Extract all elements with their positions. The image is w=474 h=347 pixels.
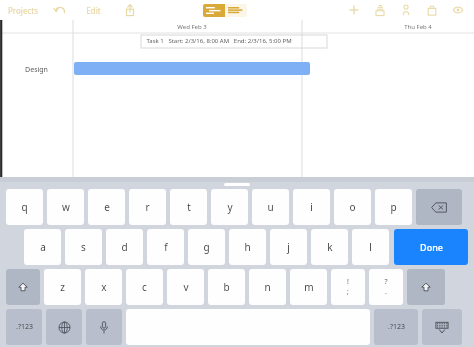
staticText: Thu Feb 4 <box>404 23 432 31</box>
button[interactable]: Hide keyboard <box>422 309 462 345</box>
staticText: z <box>60 280 65 294</box>
button[interactable]: i <box>293 189 330 225</box>
staticText: k <box>327 240 333 254</box>
button[interactable]: Edit <box>86 5 101 16</box>
staticText: f <box>164 240 168 254</box>
button[interactable]: View <box>450 2 466 18</box>
staticText: .?123 <box>388 322 405 332</box>
button[interactable]: Design task bar <box>74 62 310 75</box>
button[interactable]: d <box>106 229 143 265</box>
button[interactable]: Shift <box>6 269 40 305</box>
button[interactable]: Task 1 Start: 2/3/16, 8:00 AM End: 2/3/1… <box>146 37 292 45</box>
button[interactable]: z <box>44 269 81 305</box>
staticText: Done <box>420 241 443 253</box>
button[interactable]: m <box>290 269 327 305</box>
button[interactable]: b <box>208 269 245 305</box>
staticText: e <box>104 200 110 214</box>
button[interactable]: n <box>249 269 286 305</box>
staticText: .?123 <box>16 322 33 332</box>
staticText: d <box>121 240 128 254</box>
button[interactable]: x <box>85 269 122 305</box>
button[interactable]: w <box>47 189 84 225</box>
button[interactable]: e <box>88 189 125 225</box>
staticText: r <box>145 200 150 214</box>
button[interactable]: u <box>252 189 289 225</box>
button[interactable]: Shift <box>407 269 445 305</box>
staticText: x <box>101 280 107 294</box>
staticText: a <box>40 240 46 254</box>
button[interactable]: h <box>229 229 266 265</box>
staticText: b <box>223 280 230 294</box>
button[interactable]: a <box>24 229 61 265</box>
staticText: w <box>62 200 70 214</box>
staticText: i <box>310 200 313 214</box>
button[interactable]: Briefcase <box>424 2 440 18</box>
staticText: l <box>369 240 372 254</box>
button[interactable]: c <box>126 269 163 305</box>
button[interactable]: q <box>6 189 43 225</box>
button[interactable]: v <box>167 269 204 305</box>
staticText: c <box>142 280 147 294</box>
button[interactable]: Dictation <box>86 309 122 345</box>
button[interactable]: l <box>352 229 389 265</box>
staticText: Wed Feb 3 <box>177 23 207 31</box>
button[interactable]: k <box>311 229 348 265</box>
staticText: y <box>227 200 233 214</box>
button[interactable]: t <box>170 189 207 225</box>
staticText: o <box>349 200 356 214</box>
button[interactable]: y <box>211 189 248 225</box>
button[interactable]: Person <box>398 2 414 18</box>
staticText: q <box>21 200 28 214</box>
button[interactable]: p <box>375 189 412 225</box>
button[interactable]: .?123 <box>6 309 42 345</box>
staticText: Design <box>25 65 48 75</box>
button[interactable]: Assign <box>372 2 388 18</box>
button[interactable]: ! <box>331 269 365 305</box>
button[interactable]: Add <box>346 2 362 18</box>
button[interactable]: ? <box>369 269 403 305</box>
staticText: u <box>267 200 274 214</box>
button[interactable]: List view <box>225 4 247 17</box>
staticText: h <box>244 240 251 254</box>
staticText: Task 1 Start: 2/3/16, 8:00 AM End: 2/3/1… <box>146 37 292 45</box>
staticText: ! <box>347 277 349 287</box>
button[interactable]: .?123 <box>374 309 418 345</box>
button[interactable]: j <box>270 229 307 265</box>
button[interactable]: Done <box>394 229 468 265</box>
staticText: ; <box>347 287 349 297</box>
staticText: t <box>187 200 191 214</box>
staticText: g <box>203 240 210 254</box>
button[interactable]: Next keyboard <box>46 309 82 345</box>
button[interactable]: g <box>188 229 225 265</box>
button[interactable]: Share <box>122 2 138 18</box>
button[interactable]: Projects <box>8 5 38 16</box>
staticText: n <box>264 280 271 294</box>
button[interactable]: s <box>65 229 102 265</box>
staticText: . <box>385 287 387 297</box>
staticText: m <box>304 280 314 294</box>
button[interactable]: o <box>334 189 371 225</box>
staticText: v <box>183 280 189 294</box>
button[interactable]: r <box>129 189 166 225</box>
button[interactable]: Gantt view <box>203 4 225 17</box>
staticText: j <box>287 240 290 254</box>
button[interactable]: Backspace <box>416 189 462 225</box>
button[interactable]: Undo <box>52 2 68 18</box>
button[interactable]: f <box>147 229 184 265</box>
staticText: p <box>390 200 397 214</box>
staticText: s <box>81 240 86 254</box>
staticText: ? <box>384 277 388 287</box>
